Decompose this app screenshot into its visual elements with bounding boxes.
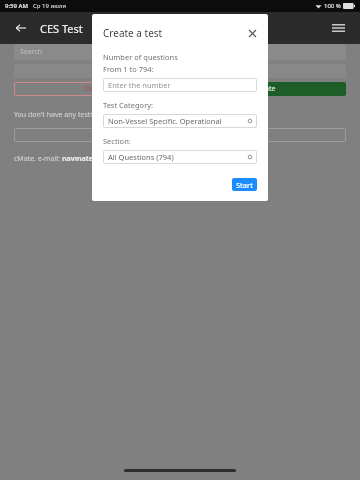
- staticText: Number of questions: [103, 52, 178, 62]
- button[interactable]: Menu: [326, 16, 350, 40]
- staticText: 9:59 AM: [5, 2, 28, 10]
- staticText: Search: [20, 47, 43, 57]
- button[interactable]: Non-Vessel Specific. Operational (Deck): [103, 114, 257, 128]
- staticText: Ср 19 июля: [33, 2, 66, 10]
- staticText: Section:: [103, 136, 131, 146]
- staticText: 100 %: [324, 2, 341, 10]
- button[interactable]: Start: [232, 178, 257, 191]
- staticText: CES Test: [40, 21, 83, 36]
- button[interactable]: Create: [183, 82, 346, 96]
- button[interactable]: Search: [14, 44, 346, 60]
- button[interactable]: All Questions (794): [103, 150, 257, 164]
- staticText: navmateapp@: [62, 154, 113, 164]
- staticText: From 1 to 794:: [103, 64, 154, 74]
- button[interactable]: Back: [10, 17, 32, 39]
- staticText: Start: [236, 180, 253, 190]
- staticText: You don't have any tests created: [14, 110, 121, 120]
- staticText: Create: [254, 84, 276, 94]
- button[interactable]: Close: [244, 25, 260, 41]
- staticText: Create a test: [103, 26, 163, 40]
- staticText: All Questions (794): [108, 152, 174, 162]
- button[interactable]: Delete: [14, 82, 177, 96]
- staticText: cMate. e-mail:: [14, 154, 62, 164]
- staticText: Delete: [85, 84, 107, 94]
- staticText: Test Category:: [103, 100, 154, 110]
- staticText: Non-Vessel Specific. Operational (Deck): [108, 116, 243, 126]
- button[interactable]: Enter the number: [103, 78, 257, 92]
- staticText: Enter the number: [108, 80, 171, 90]
